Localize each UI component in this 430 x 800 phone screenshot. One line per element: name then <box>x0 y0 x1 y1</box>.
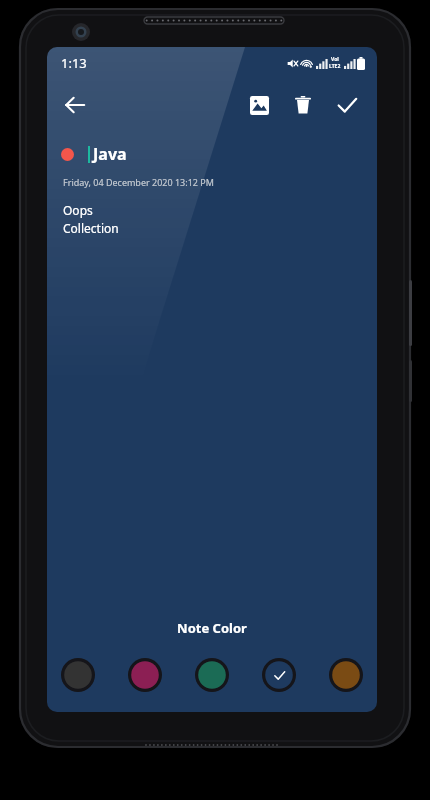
staticText: Java <box>93 143 127 165</box>
button[interactable]: Delete <box>281 83 325 127</box>
button[interactable]: Pink color <box>128 658 162 692</box>
button[interactable]: Back <box>53 83 97 127</box>
staticText: Friday, 04 December 2020 13:12 PM <box>63 176 214 188</box>
button[interactable]: Dark color <box>61 658 95 692</box>
staticText: LTE2 <box>329 63 341 70</box>
button[interactable]: Brown color <box>329 658 363 692</box>
staticText: Collection <box>63 220 119 236</box>
staticText: Vol <box>331 56 339 63</box>
staticText: Oops <box>63 202 93 218</box>
button[interactable]: Add image <box>237 83 281 127</box>
staticText: Note Color <box>177 619 247 637</box>
button[interactable]: Blue color, selected <box>262 658 296 692</box>
button[interactable]: Green color <box>195 658 229 692</box>
button[interactable]: Save <box>325 83 369 127</box>
staticText: 1:13 <box>61 54 87 72</box>
